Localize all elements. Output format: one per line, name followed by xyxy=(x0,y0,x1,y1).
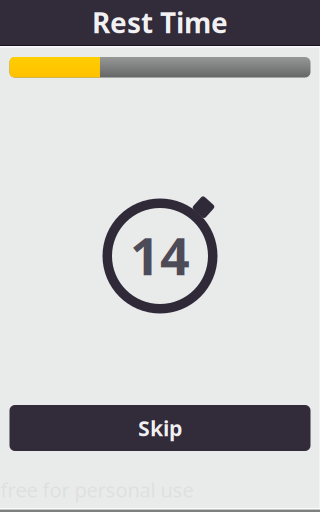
staticText: 14 xyxy=(130,220,190,290)
button[interactable]: Skip xyxy=(9,405,310,451)
staticText: free for personal use xyxy=(0,476,193,503)
staticText: Rest Time xyxy=(92,4,228,41)
staticText: Skip xyxy=(138,414,182,442)
